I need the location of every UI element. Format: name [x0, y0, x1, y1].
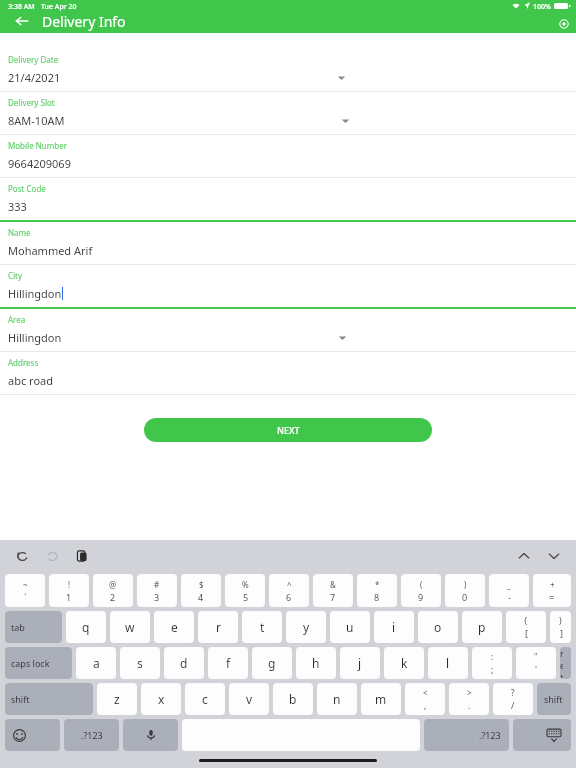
button[interactable]: shift: [5, 683, 93, 715]
button[interactable]: c: [185, 683, 225, 715]
staticText: ;: [491, 663, 494, 675]
button[interactable]: b: [273, 683, 313, 715]
staticText: return: [560, 647, 563, 679]
staticText: Hillingdon: [8, 286, 62, 301]
button[interactable]: %: [225, 574, 265, 607]
button[interactable]: Location: [558, 18, 570, 30]
button[interactable]: Back: [10, 9, 34, 33]
button[interactable]: p: [462, 611, 502, 643]
button[interactable]: Next field: [544, 546, 564, 566]
staticText: }: [559, 615, 563, 626]
button[interactable]: ): [445, 574, 485, 607]
staticText: #: [154, 579, 160, 590]
button[interactable]: j: [340, 647, 380, 679]
button[interactable]: caps lock: [5, 647, 72, 679]
button[interactable]: *: [357, 574, 397, 607]
button[interactable]: @: [93, 574, 133, 607]
button[interactable]: s: [120, 647, 160, 679]
button[interactable]: q: [66, 611, 106, 643]
staticText: City: [8, 270, 23, 281]
staticText: u: [346, 619, 354, 635]
button[interactable]: tab: [5, 611, 62, 643]
staticText: 100%: [533, 2, 551, 12]
button[interactable]: w: [110, 611, 150, 643]
button[interactable]: k: [384, 647, 424, 679]
button[interactable]: h: [296, 647, 336, 679]
staticText: l: [446, 655, 450, 671]
button[interactable]: #: [137, 574, 177, 607]
button[interactable]: $: [181, 574, 221, 607]
button[interactable]: return: [560, 647, 571, 679]
button[interactable]: o: [418, 611, 458, 643]
button[interactable]: f: [208, 647, 248, 679]
staticText: 21/4/2021: [8, 70, 61, 85]
button[interactable]: v: [229, 683, 269, 715]
button[interactable]: Delivery Slot: [0, 92, 576, 135]
button[interactable]: ": [516, 647, 556, 679]
button[interactable]: m: [361, 683, 401, 715]
button[interactable]: {: [506, 611, 546, 643]
button[interactable]: r: [198, 611, 238, 643]
staticText: r: [216, 619, 221, 635]
button[interactable]: City: [0, 265, 576, 309]
staticText: Tue Apr 20: [41, 2, 77, 12]
button[interactable]: ~: [5, 574, 45, 607]
staticText: Name: [8, 227, 31, 238]
button[interactable]: (: [401, 574, 441, 607]
button[interactable]: g: [252, 647, 292, 679]
staticText: !: [68, 579, 71, 590]
button[interactable]: :: [472, 647, 512, 679]
staticText: `: [24, 591, 27, 603]
button[interactable]: .?123: [424, 719, 509, 751]
button[interactable]: Area: [0, 309, 576, 352]
button[interactable]: Post Code: [0, 178, 576, 222]
staticText: k: [401, 655, 408, 671]
button[interactable]: +: [533, 574, 571, 607]
button[interactable]: d: [164, 647, 204, 679]
button[interactable]: Address: [0, 352, 576, 395]
button[interactable]: ?: [493, 683, 533, 715]
staticText: 2: [110, 591, 116, 603]
staticText: o: [434, 619, 442, 635]
staticText: b: [289, 691, 297, 707]
button[interactable]: Dictation: [123, 719, 178, 751]
button[interactable]: e: [154, 611, 194, 643]
button[interactable]: Redo: [42, 546, 62, 566]
button[interactable]: Previous field: [514, 546, 534, 566]
button[interactable]: a: [76, 647, 116, 679]
staticText: f: [226, 655, 231, 671]
button[interactable]: i: [374, 611, 414, 643]
button[interactable]: n: [317, 683, 357, 715]
button[interactable]: Hide keyboard: [513, 719, 571, 751]
button[interactable]: Undo: [12, 546, 32, 566]
button[interactable]: Paste: [72, 546, 92, 566]
button[interactable]: u: [330, 611, 370, 643]
button[interactable]: Delivery Date: [0, 49, 576, 92]
button[interactable]: !: [49, 574, 89, 607]
button[interactable]: Emoji: [5, 719, 60, 751]
button[interactable]: <: [405, 683, 445, 715]
button[interactable]: z: [97, 683, 137, 715]
button[interactable]: ^: [269, 574, 309, 607]
staticText: c: [202, 691, 208, 707]
button[interactable]: t: [242, 611, 282, 643]
button[interactable]: l: [428, 647, 468, 679]
button[interactable]: y: [286, 611, 326, 643]
staticText: 3: [154, 591, 160, 603]
button[interactable]: _: [489, 574, 529, 607]
button[interactable]: Mobile Number: [0, 135, 576, 178]
button[interactable]: }: [550, 611, 571, 643]
button[interactable]: shift: [537, 683, 571, 715]
button[interactable]: NEXT: [144, 418, 432, 442]
button[interactable]: Name: [0, 222, 576, 265]
staticText: [: [525, 627, 528, 639]
staticText: NEXT: [277, 424, 300, 436]
staticText: e: [171, 619, 178, 635]
button[interactable]: &: [313, 574, 353, 607]
button[interactable]: .?123: [64, 719, 119, 751]
button[interactable]: >: [449, 683, 489, 715]
button[interactable]: x: [141, 683, 181, 715]
staticText: p: [478, 619, 486, 635]
staticText: _: [507, 579, 511, 590]
